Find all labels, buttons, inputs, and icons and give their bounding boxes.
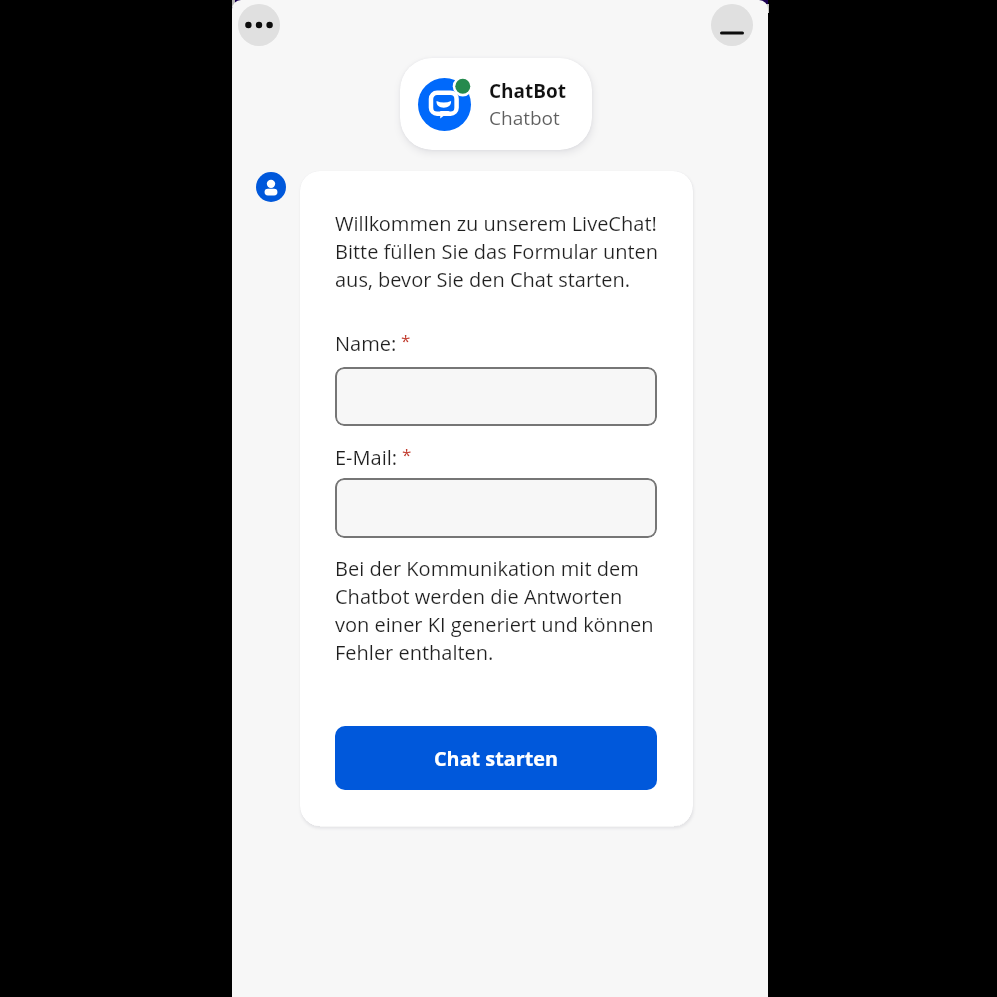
button[interactable]: Text input — [335, 478, 657, 538]
button[interactable]: Text input — [335, 367, 657, 426]
staticText: Name: — [335, 330, 397, 357]
button[interactable]: Chat starten — [335, 726, 657, 790]
button[interactable]: Minimize — [711, 4, 753, 46]
staticText: Chat starten — [434, 745, 559, 772]
staticText: ChatBot — [489, 78, 567, 104]
staticText: Chatbot — [489, 105, 560, 131]
staticText: * — [402, 443, 412, 466]
button[interactable]: ChatBot — [400, 58, 592, 150]
button[interactable]: More options — [238, 4, 280, 46]
staticText: Bei der Kommunikation mit dem Chatbot we… — [335, 555, 654, 666]
staticText: E-Mail: — [335, 444, 398, 471]
staticText: Willkommen zu unserem LiveChat! Bitte fü… — [335, 210, 659, 293]
staticText: * — [401, 329, 411, 352]
